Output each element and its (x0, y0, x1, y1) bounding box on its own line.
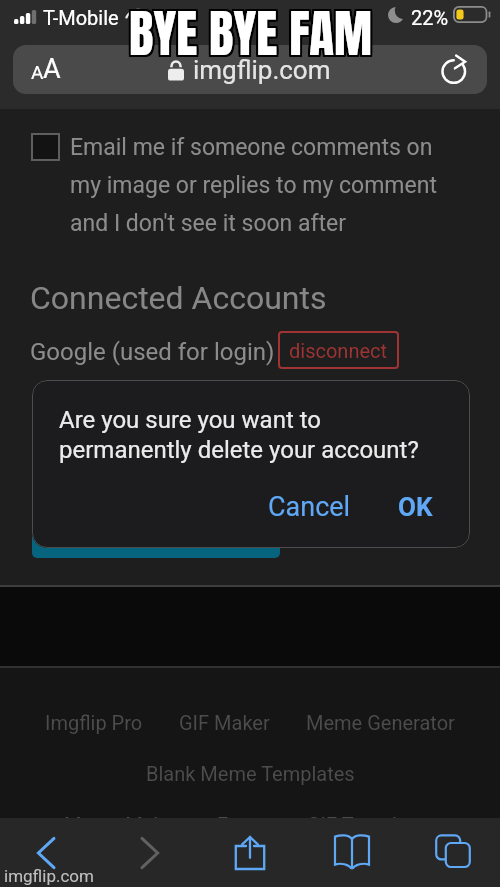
staticText: Meme Generator (306, 711, 455, 734)
staticText: BYE BYE FAM (130, 0, 373, 70)
button[interactable]: Blank Meme Templates (146, 762, 355, 785)
staticText: Google (used for login) (30, 338, 275, 366)
button[interactable]: Share (216, 818, 284, 887)
staticText: disconnect (289, 339, 388, 362)
staticText: Email me if someone comments on (70, 134, 433, 161)
button[interactable]: Back (12, 818, 80, 887)
staticText: imgflip.com (193, 55, 331, 85)
staticText: 22% (411, 6, 449, 29)
staticText: Meme Maker (64, 813, 181, 836)
button[interactable]: Text size options (13, 45, 487, 94)
staticText: Imgflip Pro (45, 711, 143, 734)
staticText: BYE BYE FAM (131, 0, 374, 71)
button[interactable]: Reload page (441, 55, 470, 84)
staticText: Connected Accounts (30, 279, 327, 317)
button[interactable]: Meme Maker (64, 813, 181, 836)
staticText: A (31, 61, 44, 83)
staticText: my image or replies to my comment (70, 172, 437, 199)
staticText: BYE BYE FAM (131, 0, 374, 72)
staticText: Are you sure you want to (59, 406, 322, 434)
staticText: Funny (217, 813, 271, 836)
staticText: BYE BYE FAM (131, 0, 374, 70)
staticText: GIF Maker (179, 711, 270, 734)
staticText: imgflip.com (4, 866, 94, 886)
staticText: Cancel (268, 491, 351, 523)
staticText: BYE BYE FAM (128, 0, 371, 73)
staticText: BYE BYE FAM (127, 0, 370, 73)
staticText: BYE BYE FAM (128, 0, 371, 70)
staticText: BYE BYE FAM (128, 0, 371, 74)
staticText: and I don't see it soon after (70, 210, 347, 237)
staticText: BYE BYE FAM (131, 0, 374, 73)
staticText: BYE BYE FAM (127, 0, 370, 71)
button[interactable]: Imgflip Pro (45, 711, 143, 734)
button[interactable]: Bookmarks (318, 818, 386, 887)
staticText: BYE BYE FAM (127, 0, 370, 74)
button[interactable] (32, 531, 280, 558)
button[interactable]: OK (387, 489, 443, 525)
staticText: Blank Meme Templates (146, 762, 355, 785)
staticText: BYE BYE FAM (129, 0, 372, 74)
staticText: BYE BYE FAM (128, 0, 371, 72)
staticText: BYE BYE FAM (129, 0, 372, 73)
staticText: BYE BYE FAM (129, 0, 372, 71)
button[interactable]: Email me checkbox (31, 133, 60, 161)
button[interactable]: Tabs (419, 818, 487, 887)
button[interactable]: Funny (217, 813, 271, 836)
staticText: BYE BYE FAM (130, 0, 373, 74)
staticText: A (43, 53, 61, 85)
staticText: BYE BYE FAM (127, 0, 370, 72)
button[interactable]: GIF Templates (307, 813, 436, 836)
staticText: permanently delete your account? (59, 436, 419, 464)
staticText: T-Mobile (43, 6, 119, 29)
staticText: BYE BYE FAM (129, 0, 372, 70)
staticText: BYE BYE FAM (130, 0, 373, 71)
button[interactable]: GIF Maker (179, 711, 270, 734)
button[interactable]: Text size options (27, 49, 79, 90)
staticText: BYE BYE FAM (131, 0, 374, 74)
staticText: BYE BYE FAM (130, 0, 373, 73)
button[interactable]: Forward (116, 818, 184, 887)
button[interactable]: disconnect (278, 331, 399, 369)
staticText: BYE BYE FAM (128, 0, 371, 71)
staticText: BYE BYE FAM (129, 0, 372, 72)
staticText: BYE BYE FAM (130, 0, 373, 72)
staticText: GIF Templates (307, 813, 436, 836)
staticText: OK (398, 492, 433, 522)
button[interactable]: Cancel (264, 489, 354, 525)
staticText: BYE BYE FAM (127, 0, 370, 70)
button[interactable]: Meme Generator (306, 711, 455, 734)
